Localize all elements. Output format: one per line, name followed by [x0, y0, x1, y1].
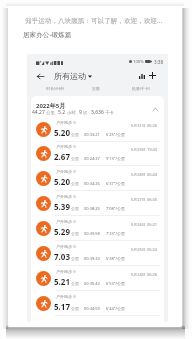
- staticText: 户外跑步: [56, 169, 72, 174]
- button[interactable]: 户外跑步: [31, 216, 164, 241]
- staticText: 次数: [92, 86, 100, 91]
- staticText: 5.39: [54, 201, 70, 212]
- staticText: 小时: [67, 110, 76, 116]
- staticText: 2022年5月: [36, 102, 66, 110]
- staticText: 公里: [71, 206, 79, 211]
- staticText: 5.2: [58, 109, 66, 116]
- staticText: 7'33"/公里: [106, 231, 125, 236]
- staticText: 00:35:43: [84, 281, 100, 286]
- staticText: 00:34:26: [84, 181, 100, 186]
- staticText: 千卡: [105, 110, 114, 116]
- staticText: 户外跑步: [56, 244, 72, 249]
- staticText: 热量(千卡): [132, 86, 150, 91]
- staticText: 户外跑步: [56, 120, 72, 125]
- staticText: 5月24日 06:26: [131, 272, 158, 277]
- staticText: 2.67: [54, 151, 70, 162]
- staticText: 7'08"/公里: [106, 206, 125, 211]
- staticText: 5.21: [54, 276, 70, 287]
- button[interactable]: Collapse: [150, 104, 160, 114]
- button[interactable]: 户外跑步: [31, 241, 164, 266]
- staticText: 知乎运动，八块腹肌：可以了解，欢迎，欢迎…: [25, 16, 163, 25]
- staticText: 3:38: [154, 59, 164, 64]
- staticText: 5月29日 19:43: [131, 147, 158, 152]
- staticText: 7.03: [54, 251, 70, 262]
- staticText: 3,636: [91, 109, 104, 116]
- staticText: 公里: [71, 306, 79, 311]
- staticText: 所有运动: [54, 71, 86, 81]
- staticText: 5.20: [54, 176, 70, 187]
- staticText: 6'25"/公里: [106, 132, 125, 137]
- staticText: 户外跑步: [56, 194, 72, 199]
- staticText: 00:39:58: [84, 231, 100, 236]
- staticText: 5月31日 06:26: [131, 123, 158, 128]
- staticText: 公里: [71, 256, 79, 261]
- staticText: 公里: [46, 110, 55, 116]
- button[interactable]: 户外跑步: [31, 266, 164, 291]
- staticText: 公里: [71, 231, 79, 236]
- button[interactable]: 户外跑步: [31, 141, 164, 166]
- staticText: 户外跑步: [56, 144, 72, 149]
- button[interactable]: 户外跑步: [31, 166, 164, 191]
- staticText: 公里: [71, 181, 79, 186]
- staticText: 5月26日 06:21: [131, 222, 158, 227]
- staticText: 时长(分钟): [46, 86, 64, 91]
- staticText: 户外跑步: [56, 294, 72, 299]
- staticText: 5月27日 06:35: [131, 197, 158, 202]
- staticText: 00:39:33: [84, 256, 100, 261]
- button[interactable]: Add: [146, 69, 159, 82]
- staticText: 00:24:37: [84, 156, 100, 161]
- staticText: 5'38"/公里: [106, 256, 125, 261]
- staticText: 户外跑步: [56, 219, 72, 224]
- staticText: 公里: [71, 281, 79, 286]
- staticText: 6'37"/公里: [106, 181, 125, 186]
- staticText: 公里: [71, 132, 79, 137]
- staticText: 5.29: [54, 226, 70, 237]
- staticText: 公里: [71, 156, 79, 161]
- staticText: 6'44"/公里: [106, 306, 125, 311]
- staticText: 44.27: [32, 109, 45, 116]
- button[interactable]: Back: [32, 68, 48, 84]
- staticText: 9: [79, 109, 82, 116]
- staticText: 100%: [133, 59, 144, 64]
- button[interactable]: 所有运动: [54, 71, 92, 81]
- staticText: 次: [83, 110, 88, 116]
- staticText: 居家办公-锻炼篇: [23, 30, 72, 39]
- staticText: 9'13"/公里: [106, 156, 125, 161]
- staticText: 5月28日 06:44: [131, 172, 158, 177]
- staticText: 户外跑步: [56, 269, 72, 274]
- staticText: 6'53"/公里: [106, 281, 125, 286]
- staticText: 5月25日 06:24: [131, 247, 158, 252]
- button[interactable]: Statistics: [135, 69, 148, 82]
- staticText: 5.17: [54, 301, 70, 312]
- staticText: 00:38:25: [84, 206, 100, 211]
- button[interactable]: 户外跑步: [31, 291, 164, 316]
- staticText: 00:34:59: [84, 306, 100, 311]
- staticText: 00:33:21: [84, 132, 100, 137]
- button[interactable]: 户外跑步: [31, 117, 164, 142]
- staticText: 5.20: [54, 127, 70, 138]
- button[interactable]: 户外跑步: [31, 191, 164, 216]
